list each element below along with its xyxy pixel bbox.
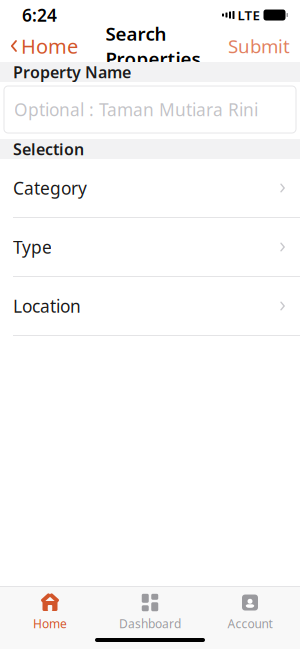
- staticText: Dashboard: [119, 615, 181, 631]
- button[interactable]: Location: [0, 277, 300, 335]
- button[interactable]: Type: [0, 218, 300, 276]
- staticText: Account: [227, 615, 272, 631]
- staticText: Type: [13, 235, 52, 258]
- staticText: 6:24: [22, 3, 57, 26]
- staticText: Category: [13, 176, 87, 199]
- staticText: Home: [33, 615, 67, 631]
- staticText: LTE: [237, 6, 259, 24]
- button[interactable]: Home: [0, 27, 78, 65]
- staticText: Home: [21, 33, 78, 59]
- staticText: Selection: [13, 138, 84, 160]
- button[interactable]: Submit: [228, 28, 300, 64]
- button[interactable]: Dashboard: [100, 586, 200, 631]
- staticText: Search Properties: [105, 21, 200, 71]
- staticText: Property Name: [13, 61, 131, 83]
- staticText: Location: [13, 294, 81, 317]
- staticText: Submit: [228, 34, 290, 58]
- button[interactable]: Category: [0, 159, 300, 217]
- button[interactable]: Account: [200, 586, 300, 631]
- staticText: Optional : Taman Mutiara Rini: [14, 98, 258, 121]
- button[interactable]: Home: [0, 586, 100, 631]
